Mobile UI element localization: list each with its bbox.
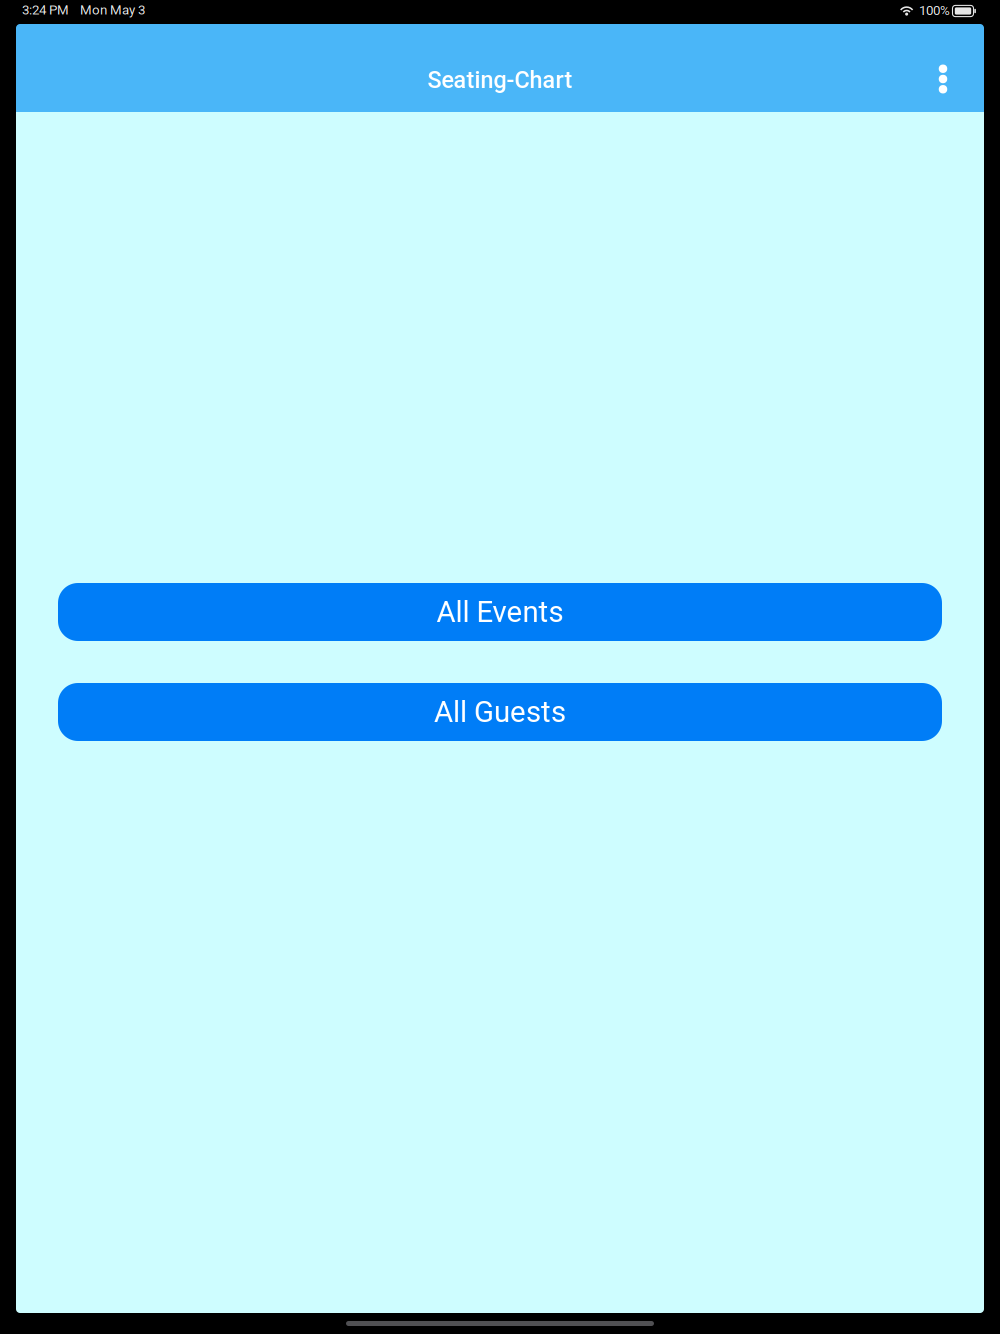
staticText: All Guests	[434, 695, 566, 729]
staticText: Seating-Chart	[427, 66, 572, 94]
staticText: 3:24 PM	[22, 2, 69, 18]
staticText: Mon May 3	[80, 2, 145, 18]
button[interactable]: All Events	[58, 583, 942, 641]
staticText: 100%	[919, 3, 950, 18]
button[interactable]: All Guests	[58, 683, 942, 741]
button[interactable]: More options	[922, 51, 964, 107]
staticText: All Events	[436, 595, 563, 629]
